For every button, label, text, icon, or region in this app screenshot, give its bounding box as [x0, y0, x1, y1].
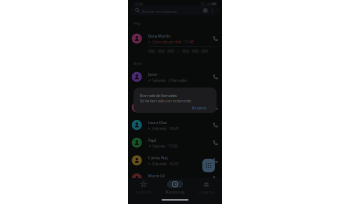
button[interactable]: Carlos Ruiz: [128, 151, 222, 169]
button[interactable]: Centro Médico: [128, 98, 222, 116]
staticText: Saliente · 2 llamadas: [152, 77, 187, 83]
button[interactable]: Marta Gil: [128, 169, 222, 187]
staticText: Ayer: [133, 60, 142, 66]
staticText: Favoritos: [136, 189, 152, 195]
button[interactable]: Acción: [147, 48, 156, 54]
staticText: Buscar en contactos: [142, 9, 177, 14]
button[interactable]: Buscar en contactos: [131, 6, 219, 15]
staticText: Elena Martín: [148, 33, 170, 39]
staticText: Laura Díaz: [148, 120, 167, 125]
staticText: Marta Gil: [148, 173, 165, 178]
staticText: Recientes: [165, 189, 184, 195]
staticText: 12:04: [133, 1, 142, 6]
staticText: Carlos Ruiz: [148, 155, 168, 160]
button[interactable]: Contactos: [191, 180, 222, 194]
staticText: 5G: [200, 1, 205, 6]
staticText: Contactos: [198, 189, 215, 195]
button[interactable]: Laura Díaz: [128, 116, 222, 134]
staticText: Entrante · 18:20: [152, 125, 178, 131]
staticText: Entrante · 16:15: [152, 161, 178, 166]
button[interactable]: Aceptar: [189, 105, 211, 110]
button[interactable]: Acción: [200, 48, 209, 54]
button[interactable]: Papá: [128, 134, 222, 152]
button[interactable]: Recientes: [159, 180, 191, 194]
button[interactable]: Acción: [156, 48, 166, 54]
staticText: Borrado de llamadas: [140, 93, 177, 98]
button[interactable]: Teclado: [202, 159, 215, 172]
staticText: Javier: [148, 72, 158, 77]
button[interactable]: Javier: [128, 68, 222, 86]
staticText: Llamada perdida: [152, 179, 181, 184]
staticText: Hoy: [133, 21, 140, 26]
button[interactable]: Favoritos: [128, 180, 159, 194]
staticText: Centro Médico: [148, 102, 174, 107]
button[interactable]: Acción: [166, 48, 175, 54]
staticText: Papá: [148, 137, 156, 143]
button[interactable]: Acción: [190, 48, 200, 54]
staticText: Llamada perdida · 11:48: [152, 39, 193, 44]
button[interactable]: Acción: [181, 48, 190, 54]
button[interactable]: Elena Martín: [128, 30, 222, 47]
staticText: Saliente · 17:02: [152, 143, 177, 148]
staticText: Aceptar: [192, 105, 207, 110]
staticText: Se ha borrado correctamente.: [140, 98, 192, 103]
